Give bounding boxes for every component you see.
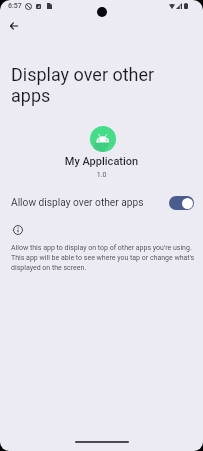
staticText: Allow display over other apps: [11, 197, 169, 209]
staticText: My Application: [0, 155, 203, 168]
button[interactable]: Allow display over other apps: [0, 191, 203, 215]
staticText: Display over other apps: [11, 64, 181, 106]
button[interactable]: Back: [3, 15, 25, 37]
staticText: 1.0: [0, 171, 203, 179]
staticText: 6:57: [8, 2, 22, 10]
staticText: Allow this app to display on top of othe…: [11, 244, 198, 271]
